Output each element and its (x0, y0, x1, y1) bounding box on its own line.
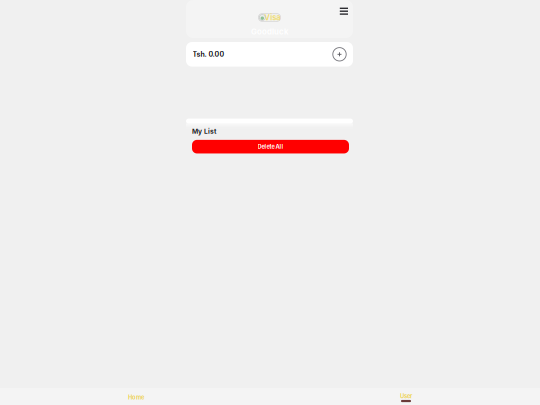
button[interactable]: User (366, 388, 446, 405)
staticText: Delete All (257, 143, 283, 150)
staticText: Tsh. 0.00 (192, 50, 224, 58)
staticText: User (400, 393, 412, 399)
staticText: Home (128, 394, 144, 401)
button[interactable]: Add money (332, 47, 346, 61)
staticText: Visa (264, 13, 280, 22)
staticText: Goodluck (251, 27, 288, 36)
button[interactable]: Menu (337, 5, 351, 18)
button[interactable]: Delete All (192, 140, 349, 153)
staticText: My List (192, 127, 216, 135)
button[interactable]: Home (96, 388, 176, 405)
